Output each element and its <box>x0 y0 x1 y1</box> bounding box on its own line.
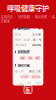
staticText: 姓名 <box>15 32 21 36</box>
staticText: 用药方案 <box>17 63 29 68</box>
staticText: 医 <box>25 86 30 93</box>
staticText: 吸入剂 <box>15 69 24 73</box>
staticText: 在线问诊 · 用药提醒 · 随访管理 · 报告解读 <box>1 15 55 23</box>
staticText: 晚 20:00 <box>32 75 40 78</box>
staticText: 王小明 <box>32 32 41 36</box>
staticText: 早 8:00 <box>21 75 28 78</box>
staticText: 气短 <box>28 56 32 60</box>
staticText: 呼吸健康守护 <box>7 3 49 13</box>
staticText: 症状标签 <box>17 49 29 54</box>
staticText: 就诊编号 <box>15 43 27 47</box>
staticText: 每日 2 次 <box>29 69 41 73</box>
staticText: 胸闷 <box>36 56 40 60</box>
staticText: 男 / 42 <box>33 38 41 42</box>
staticText: 2024-0831 <box>32 43 41 47</box>
staticText: 基本信息 <box>17 26 29 31</box>
staticText: 复诊提醒 <box>15 83 23 86</box>
staticText: 4 周后 · 呼吸内科 <box>25 81 41 88</box>
staticText: 性别 / 年龄 <box>15 38 30 42</box>
staticText: 咳嗽 <box>20 56 24 60</box>
